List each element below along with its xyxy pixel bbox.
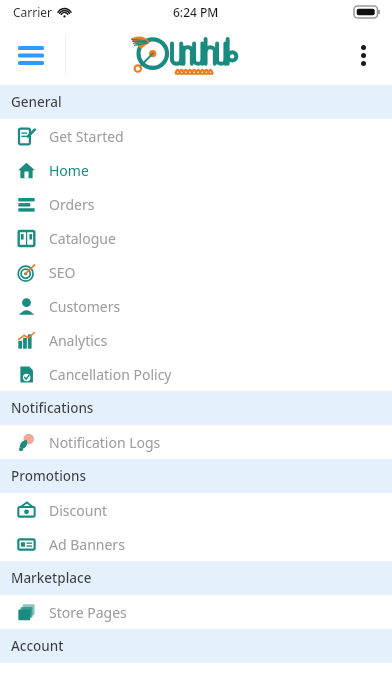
staticText: Orders — [49, 195, 95, 214]
button[interactable]: Get Started — [0, 119, 392, 153]
button[interactable]: Notification Logs — [0, 425, 392, 459]
button[interactable]: Store Pages — [0, 595, 392, 629]
staticText: Carrier — [13, 4, 53, 20]
staticText: Cancellation Policy — [49, 365, 172, 384]
staticText: Promotions — [11, 467, 87, 485]
button[interactable]: Analytics — [0, 323, 392, 357]
staticText: General — [11, 93, 62, 111]
staticText: Notification Logs — [49, 433, 161, 452]
staticText: 6:24 PM — [173, 4, 219, 20]
button[interactable]: Ad Banners — [0, 527, 392, 561]
button[interactable]: Home — [0, 153, 392, 187]
button[interactable]: Orders — [0, 187, 392, 221]
staticText: Ad Banners — [49, 535, 125, 554]
button[interactable]: Open navigation menu — [9, 33, 53, 77]
button[interactable]: Catalogue — [0, 221, 392, 255]
staticText: Home — [49, 161, 89, 180]
staticText: Analytics — [49, 331, 108, 350]
staticText: Customers — [49, 297, 121, 316]
button[interactable]: Customers — [0, 289, 392, 323]
button[interactable]: SEO — [0, 255, 392, 289]
staticText: Get Started — [49, 127, 124, 146]
staticText: Discount — [49, 501, 108, 520]
staticText: Account — [11, 637, 64, 655]
staticText: Catalogue — [49, 229, 116, 248]
staticText: Marketplace — [11, 569, 92, 587]
staticText: Notifications — [11, 399, 94, 417]
button[interactable]: Discount — [0, 493, 392, 527]
button[interactable]: Cancellation Policy — [0, 357, 392, 391]
button[interactable]: More options — [341, 33, 385, 77]
staticText: SEO — [49, 263, 76, 282]
staticText: Store Pages — [49, 603, 127, 622]
